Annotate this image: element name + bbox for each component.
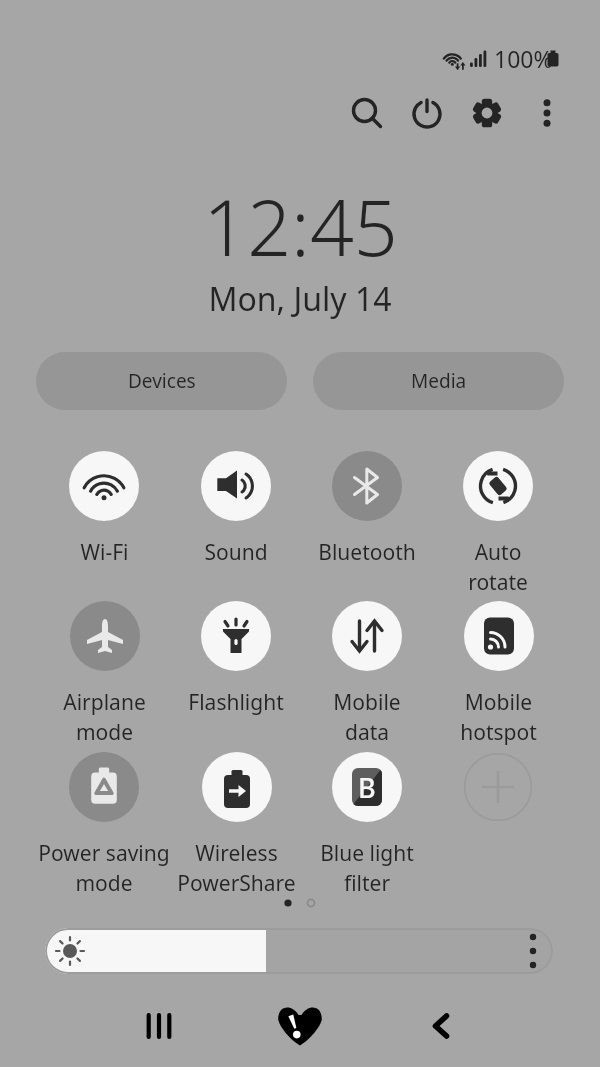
staticText: Power saving mode bbox=[38, 839, 170, 897]
staticText: Mobile data bbox=[333, 688, 401, 746]
button[interactable] bbox=[201, 451, 271, 521]
staticText: Bluetooth bbox=[318, 538, 416, 567]
button[interactable] bbox=[332, 451, 402, 521]
button[interactable]: Add bbox=[463, 752, 533, 822]
staticText: Media bbox=[411, 368, 467, 394]
staticText: 100% bbox=[494, 43, 553, 74]
staticText: Mon, July 14 bbox=[208, 277, 392, 321]
button[interactable] bbox=[69, 752, 139, 822]
button[interactable]: More options bbox=[520, 86, 574, 140]
staticText: Flashlight bbox=[188, 688, 284, 717]
staticText: B bbox=[358, 769, 376, 806]
staticText: Mobile hotspot bbox=[460, 688, 537, 746]
button[interactable] bbox=[70, 601, 140, 671]
button[interactable] bbox=[45, 928, 553, 974]
staticText: Sound bbox=[204, 538, 268, 567]
staticText: Wi-Fi bbox=[80, 538, 129, 567]
button[interactable]: Search bbox=[338, 86, 392, 140]
button[interactable] bbox=[464, 601, 534, 671]
button[interactable]: Recents bbox=[119, 988, 199, 1064]
button[interactable]: Devices bbox=[36, 352, 287, 410]
button[interactable] bbox=[201, 601, 271, 671]
staticText: Blue light filter bbox=[320, 839, 414, 897]
button[interactable]: B bbox=[332, 752, 402, 822]
button[interactable]: Settings bbox=[460, 86, 514, 140]
staticText: Devices bbox=[128, 368, 196, 394]
button[interactable] bbox=[463, 451, 533, 521]
button[interactable]: Media bbox=[313, 352, 564, 410]
button[interactable]: Power bbox=[400, 87, 454, 141]
staticText: 12:45 bbox=[203, 174, 398, 279]
button[interactable] bbox=[332, 601, 402, 671]
button[interactable] bbox=[69, 451, 139, 521]
staticText: Wireless PowerShare bbox=[177, 839, 296, 897]
staticText: Auto rotate bbox=[468, 538, 528, 596]
button[interactable] bbox=[202, 752, 272, 822]
button[interactable]: Home bbox=[260, 988, 340, 1064]
button[interactable]: Back bbox=[401, 988, 481, 1064]
staticText: Airplane mode bbox=[63, 688, 146, 746]
